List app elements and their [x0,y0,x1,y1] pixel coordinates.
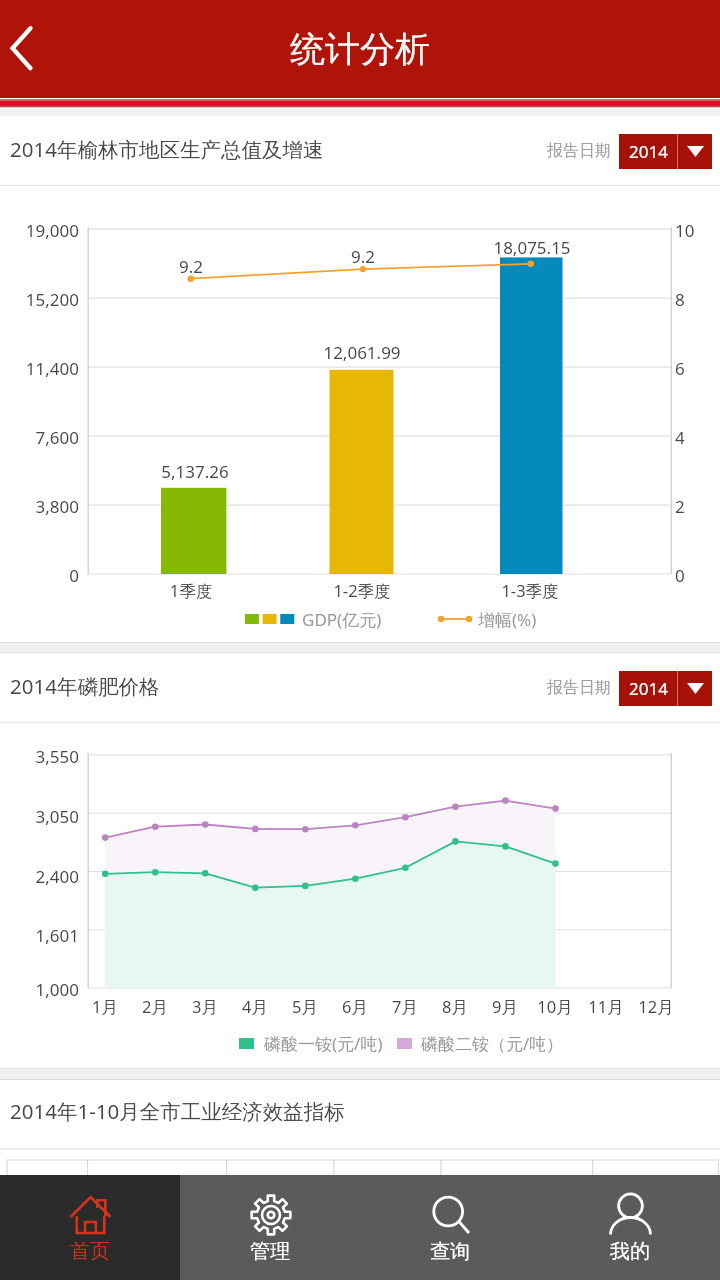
staticText: 4 [675,426,715,449]
staticText: 4月 [205,995,305,1018]
staticText: 6 [675,357,715,380]
button[interactable]: 管理 [180,1175,360,1280]
staticText: 增幅(%) [478,608,578,631]
staticText: 1-3季度 [460,579,600,602]
staticText: 5月 [255,995,355,1018]
staticText: 1月 [55,995,155,1018]
staticText: 3,550 [0,745,79,768]
staticText: 5,137.26 [115,460,275,483]
staticText: 7月 [355,995,455,1018]
button[interactable]: 首页 [0,1175,180,1280]
staticText: 我的 [610,1239,650,1264]
staticText: 2月 [105,995,205,1018]
staticText: 报告日期 [547,678,611,698]
staticText: 10月 [505,995,605,1018]
staticText: 2 [675,495,715,518]
staticText: 12月 [606,995,706,1018]
staticText: 0 [0,564,79,587]
button[interactable]: 2014 [619,134,712,169]
staticText: 首页 [70,1239,110,1264]
staticText: 3,800 [0,495,79,518]
staticText: 2014年1-10月全市工业经济效益指标 [10,1097,345,1125]
staticText: 9月 [455,995,555,1018]
staticText: 8月 [405,995,505,1018]
staticText: 11,400 [0,357,79,380]
button[interactable]: Back [0,0,66,98]
staticText: 8 [675,288,715,311]
staticText: 6月 [305,995,405,1018]
button[interactable]: 2014年1-10月全市工业经济效益指标 [0,1079,720,1143]
staticText: 管理 [250,1239,290,1264]
staticText: 11月 [556,995,656,1018]
button[interactable]: 2014 [619,671,712,706]
staticText: 2014 [629,677,668,700]
staticText: 3月 [155,995,255,1018]
staticText: 3,050 [0,805,79,828]
staticText: GDP(亿元) [302,608,412,631]
staticText: 统计分析 [290,27,430,71]
button[interactable]: 查询 [360,1175,540,1280]
staticText: 18,075.15 [452,236,612,259]
staticText: 2014年榆林市地区生产总值及增速 [10,135,324,163]
staticText: 1-2季度 [292,579,432,602]
staticText: 1季度 [121,579,261,602]
staticText: 2014 [629,140,668,163]
staticText: 2014年磷肥价格 [10,672,160,700]
staticText: 15,200 [0,288,79,311]
staticText: 12,061.99 [282,341,442,364]
button[interactable]: 我的 [540,1175,720,1280]
staticText: 查询 [430,1239,470,1264]
staticText: 7,600 [0,426,79,449]
staticText: 0 [675,564,715,587]
staticText: 2,400 [0,865,79,888]
staticText: 9.2 [323,245,403,268]
staticText: 1,000 [0,978,79,1001]
staticText: 磷酸二铵（元/吨） [421,1032,581,1055]
staticText: 10 [675,219,715,242]
staticText: 19,000 [0,219,79,242]
staticText: 磷酸一铵(元/吨) [264,1032,404,1055]
staticText: 报告日期 [547,141,611,161]
staticText: 1,601 [0,924,79,947]
staticText: 9.2 [151,255,231,278]
